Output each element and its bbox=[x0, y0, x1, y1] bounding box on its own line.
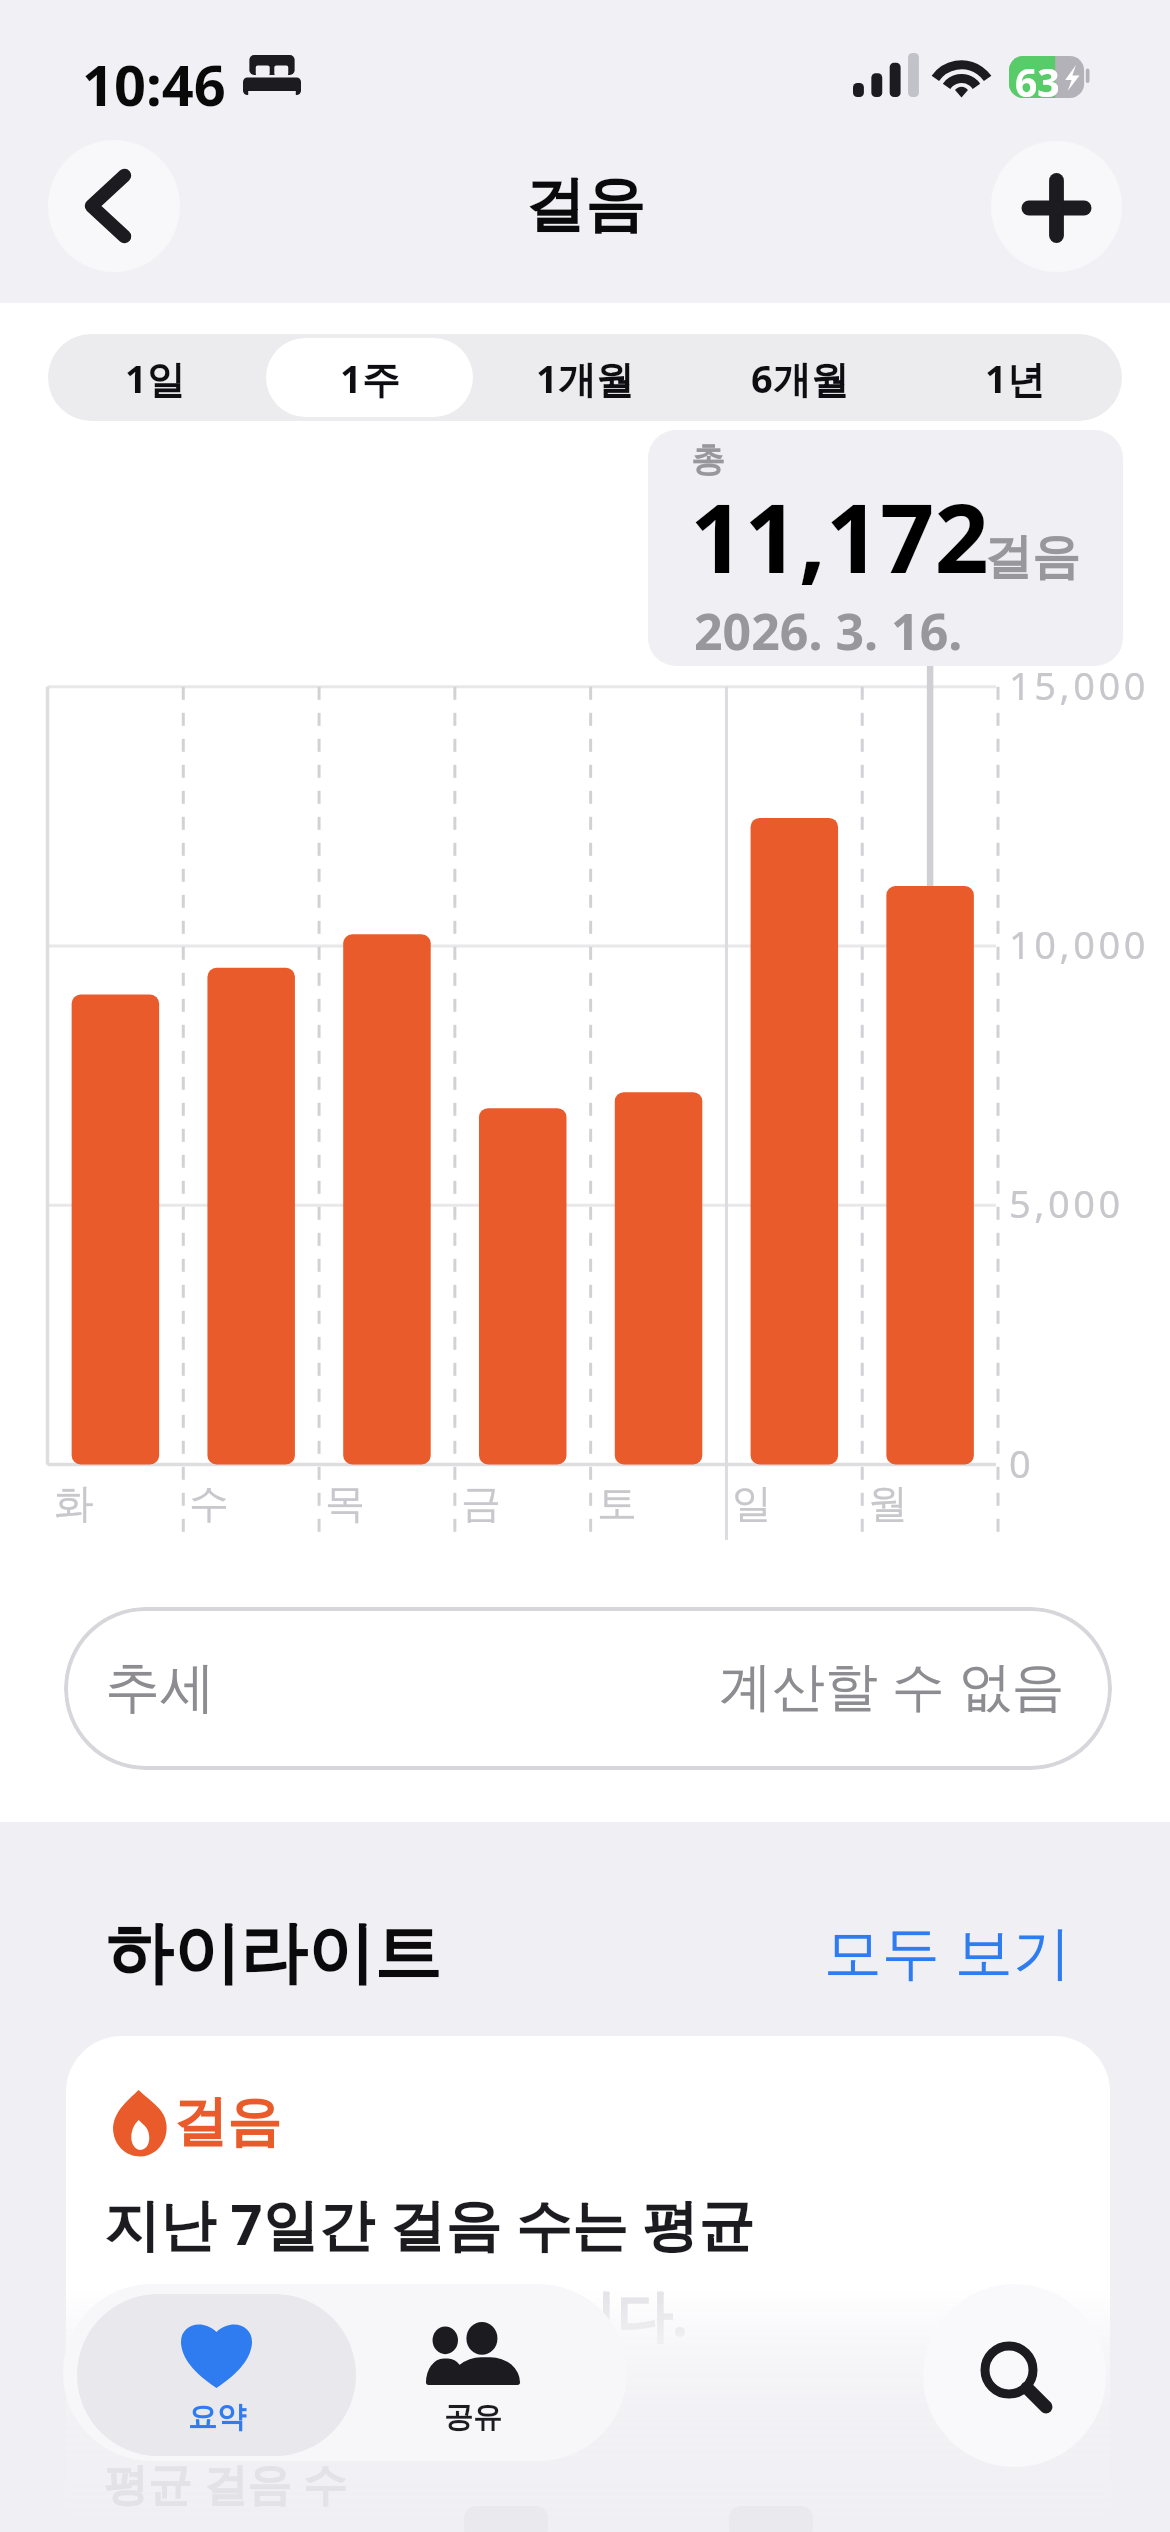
staticText: 평균 걸음 수 bbox=[104, 2453, 347, 2513]
staticText: 10,792걸음이었습니다. bbox=[104, 2276, 688, 2352]
button[interactable]: 걸음 bbox=[66, 2036, 1110, 2532]
staticText: 일 bbox=[732, 1478, 772, 1528]
staticText: 목 bbox=[325, 1478, 365, 1528]
staticText: 0 bbox=[1009, 1437, 1035, 1489]
staticText: 월 bbox=[868, 1478, 908, 1528]
button[interactable]: 1일 bbox=[52, 338, 258, 417]
button[interactable]: 모두 보기 bbox=[824, 1911, 1072, 1990]
staticText: 걸음 bbox=[173, 2088, 281, 2156]
button[interactable]: Add bbox=[991, 141, 1122, 272]
staticText: 15,000 bbox=[1009, 659, 1149, 711]
staticText: 금 bbox=[461, 1478, 501, 1528]
staticText: 1년 bbox=[985, 352, 1045, 404]
staticText: 계산할 수 없음 bbox=[719, 1648, 1065, 1720]
button[interactable]: Back bbox=[48, 140, 180, 272]
button[interactable]: 1주 bbox=[266, 338, 473, 417]
button[interactable]: 요약 bbox=[77, 2294, 356, 2456]
button[interactable]: 추세 bbox=[64, 1607, 1112, 1770]
staticText: 수 bbox=[189, 1478, 229, 1528]
staticText: 토 bbox=[597, 1478, 637, 1528]
staticText: 걸음 bbox=[0, 167, 1170, 243]
button[interactable]: 6개월 bbox=[696, 338, 903, 417]
staticText: 하이라이트 bbox=[106, 1911, 441, 1995]
button[interactable]: 1개월 bbox=[481, 338, 688, 417]
staticText: 2026. 3. 16. bbox=[694, 597, 963, 665]
staticText: 총 bbox=[691, 438, 725, 481]
staticText: 11,172 bbox=[690, 471, 989, 600]
staticText: 10,000 bbox=[1009, 918, 1149, 970]
staticText: 화 bbox=[54, 1478, 94, 1528]
staticText: 모두 보기 bbox=[824, 1911, 1072, 1990]
staticText: 6개월 bbox=[751, 352, 849, 404]
staticText: 1일 bbox=[125, 352, 185, 404]
staticText: 추세 bbox=[105, 1653, 215, 1722]
button[interactable]: Search bbox=[923, 2284, 1106, 2467]
button[interactable]: 공유 bbox=[346, 2294, 599, 2456]
staticText: 지난 7일간 걸음 수는 평균 bbox=[104, 2185, 755, 2261]
staticText: 5,000 bbox=[1009, 1177, 1124, 1229]
staticText: 63 bbox=[1015, 55, 1060, 97]
staticText: 10:46 bbox=[82, 46, 226, 122]
staticText: 1주 bbox=[340, 352, 400, 404]
staticText: 1개월 bbox=[536, 352, 634, 404]
staticText: 걸음 bbox=[984, 527, 1080, 587]
button[interactable]: 1년 bbox=[911, 338, 1118, 417]
staticText: 요약 bbox=[188, 2399, 246, 2436]
staticText: 공유 bbox=[444, 2399, 502, 2436]
